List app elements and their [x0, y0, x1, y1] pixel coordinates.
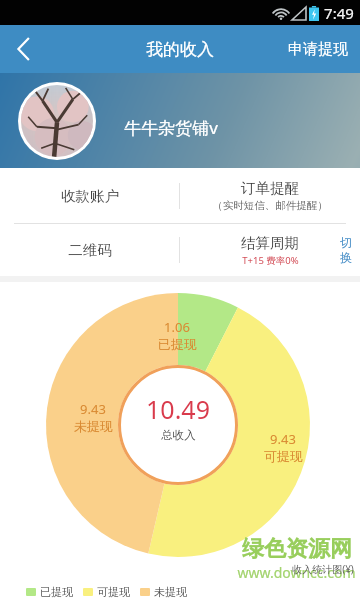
staticText: 牛牛杂货铺v — [124, 116, 218, 139]
button[interactable]: Back — [0, 25, 48, 73]
staticText: 收款账户 — [61, 187, 119, 205]
button[interactable]: 收款账户 — [0, 168, 179, 223]
staticText: 10.49 — [146, 392, 210, 426]
staticText: 订单提醒 — [241, 179, 299, 197]
staticText: 未提现 — [74, 418, 113, 434]
staticText: 收入统计图(¥) — [292, 562, 354, 576]
button[interactable]: 二维码 — [0, 224, 179, 276]
staticText: 绿色资源网 — [242, 535, 352, 563]
staticText: 已提现 — [158, 336, 197, 352]
button[interactable]: 申请提现 — [276, 25, 360, 73]
button[interactable]: 结算周期 — [241, 234, 299, 267]
staticText: 7:49 — [324, 3, 354, 23]
staticText: 我的收入 — [146, 39, 214, 60]
staticText: 可提现 — [264, 448, 303, 464]
staticText: 总收入 — [161, 428, 196, 442]
staticText: （实时短信、邮件提醒） — [212, 199, 328, 212]
staticText: 换 — [340, 250, 352, 265]
staticText: T+15 费率0% — [242, 254, 299, 267]
button[interactable]: 订单提醒 — [180, 168, 360, 223]
staticText: www.downcc.com — [237, 563, 356, 582]
staticText: 二维码 — [68, 241, 112, 259]
staticText: 已提现 — [40, 585, 73, 599]
staticText: 9.43 — [270, 430, 296, 448]
button[interactable]: Avatar — [21, 85, 93, 157]
staticText: 申请提现 — [288, 40, 348, 59]
staticText: 结算周期 — [241, 234, 299, 252]
button[interactable]: 切 — [340, 235, 352, 265]
staticText: 未提现 — [154, 585, 187, 599]
staticText: 切 — [340, 235, 352, 250]
staticText: 9.43 — [80, 400, 106, 418]
staticText: 1.06 — [164, 318, 190, 336]
staticText: 可提现 — [97, 585, 130, 599]
